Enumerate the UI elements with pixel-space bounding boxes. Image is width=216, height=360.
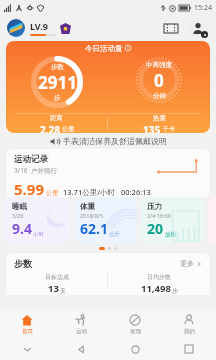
- button[interactable]: Coupons: [161, 18, 181, 38]
- button[interactable]: 我的: [162, 311, 216, 338]
- staticText: 0: [154, 69, 164, 92]
- staticText: 发现: [130, 328, 141, 335]
- staticText: 公里: [62, 125, 74, 133]
- staticText: 小时: [33, 231, 44, 238]
- staticText: 体重: [80, 202, 95, 211]
- staticText: 13: [48, 282, 59, 295]
- staticText: 公斤: [109, 231, 120, 238]
- button[interactable]: Profile: [188, 18, 208, 38]
- staticText: 5.99: [14, 179, 44, 197]
- button[interactable]: 运动记录: [6, 149, 210, 197]
- staticText: 目标达成: [45, 273, 69, 281]
- staticText: 步: [172, 287, 178, 295]
- staticText: 步数: [51, 63, 64, 71]
- staticText: LV.9: [30, 20, 48, 32]
- staticText: 9.4: [12, 219, 32, 238]
- staticText: 中高强度: [146, 61, 172, 69]
- staticText: 今日活动量: [85, 44, 123, 53]
- staticText: 我的: [184, 328, 195, 335]
- button[interactable]: 体重: [74, 197, 137, 243]
- staticText: 11,498: [141, 282, 171, 295]
- button[interactable]: 运动: [54, 311, 108, 338]
- staticText: 放松: [165, 231, 176, 238]
- staticText: 步数: [14, 258, 32, 269]
- button[interactable]: Back: [54, 345, 108, 354]
- staticText: 20: [147, 219, 164, 238]
- staticText: 00:26:13: [121, 187, 151, 197]
- staticText: 分钟: [153, 92, 166, 100]
- staticText: 日均步数: [147, 273, 171, 281]
- staticText: 3/16 户外骑行: [14, 166, 57, 175]
- button[interactable]: 手表清洁保养及舒适佩戴说明: [0, 133, 216, 149]
- staticText: 距离: [50, 114, 63, 122]
- button[interactable]: 首页: [0, 311, 54, 338]
- staticText: 手表清洁保养及舒适佩戴说明: [63, 136, 167, 146]
- staticText: 2/4 16:06: [147, 212, 171, 219]
- button[interactable]: LV.9: [7, 19, 71, 37]
- staticText: 睡眠: [12, 202, 27, 211]
- button[interactable]: 睡眠: [6, 197, 70, 243]
- staticText: 13.71公里/小时: [63, 187, 116, 197]
- staticText: 步: [54, 94, 61, 102]
- staticText: 更多: [180, 259, 194, 268]
- staticText: 压力: [147, 202, 162, 211]
- staticText: 2018/8/5: [80, 212, 103, 219]
- staticText: 2911: [38, 71, 77, 94]
- staticText: 千卡: [163, 125, 175, 133]
- other: Hide keyboard: [23, 345, 32, 354]
- button[interactable]: 压力: [141, 197, 204, 243]
- staticText: 62.1: [80, 219, 108, 238]
- staticText: 2.28: [40, 123, 60, 133]
- staticText: 135: [143, 123, 161, 133]
- button[interactable]: 步数: [6, 253, 210, 295]
- staticText: 3/25: [12, 212, 24, 219]
- staticText: 15:24: [194, 3, 212, 13]
- button[interactable]: Recents: [162, 345, 216, 353]
- button[interactable]: Home: [108, 345, 162, 354]
- staticText: 公里: [46, 189, 58, 197]
- staticText: 热量: [153, 114, 166, 122]
- button[interactable]: 发现: [108, 311, 162, 338]
- button[interactable]: 今日活动量: [6, 41, 210, 133]
- staticText: 首页: [22, 328, 33, 335]
- staticText: 运动: [76, 328, 87, 335]
- staticText: 天: [60, 287, 66, 295]
- staticText: 运动记录: [14, 154, 48, 165]
